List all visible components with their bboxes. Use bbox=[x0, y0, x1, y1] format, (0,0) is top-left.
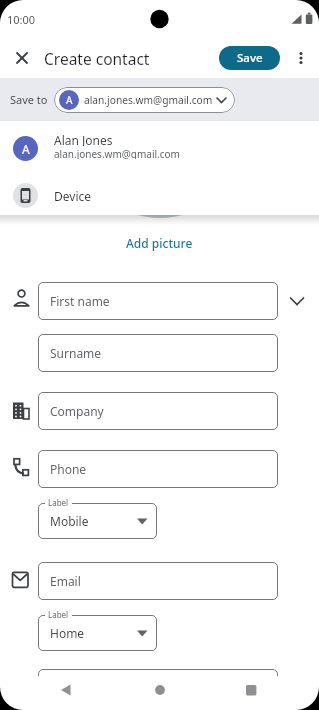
staticText: alan.jones.wm@gmail.com bbox=[54, 147, 180, 159]
button[interactable] bbox=[0, 124, 319, 170]
button[interactable] bbox=[291, 46, 311, 70]
staticText: Create contact bbox=[44, 48, 150, 69]
staticText: 10:00 bbox=[7, 12, 36, 26]
staticText: Mobile bbox=[50, 513, 89, 529]
button[interactable]: Surname bbox=[38, 334, 278, 372]
button[interactable]: A bbox=[54, 87, 235, 113]
staticText: A bbox=[22, 141, 30, 157]
staticText: A bbox=[66, 93, 73, 107]
button[interactable] bbox=[285, 289, 309, 313]
staticText: Save bbox=[237, 50, 263, 66]
staticText: Company bbox=[50, 403, 104, 419]
button[interactable] bbox=[0, 176, 319, 215]
staticText: Phone bbox=[50, 461, 87, 477]
button[interactable]: Company bbox=[38, 392, 278, 430]
button[interactable] bbox=[10, 46, 34, 70]
button[interactable]: Phone bbox=[38, 450, 278, 488]
staticText: Alan Jones bbox=[54, 132, 113, 146]
button[interactable] bbox=[233, 676, 269, 706]
button[interactable]: Add picture bbox=[0, 234, 319, 252]
button[interactable]: Save bbox=[219, 46, 280, 70]
staticText: Add picture bbox=[126, 235, 193, 251]
button[interactable]: Home bbox=[38, 615, 157, 651]
staticText: First name bbox=[50, 293, 110, 309]
button[interactable]: Email bbox=[38, 562, 278, 600]
staticText: Email bbox=[50, 573, 81, 589]
staticText: Save to bbox=[10, 92, 48, 107]
staticText: Label bbox=[48, 497, 69, 508]
staticText: Device bbox=[54, 188, 92, 202]
staticText: Surname bbox=[50, 345, 102, 361]
staticText: Label bbox=[48, 609, 69, 620]
button[interactable] bbox=[142, 676, 178, 706]
button[interactable] bbox=[48, 676, 84, 706]
button[interactable]: Mobile bbox=[38, 503, 157, 539]
button[interactable]: First name bbox=[38, 282, 278, 320]
staticText: Home bbox=[50, 625, 85, 641]
staticText: alan.jones.wm@gmail.com bbox=[84, 93, 213, 107]
